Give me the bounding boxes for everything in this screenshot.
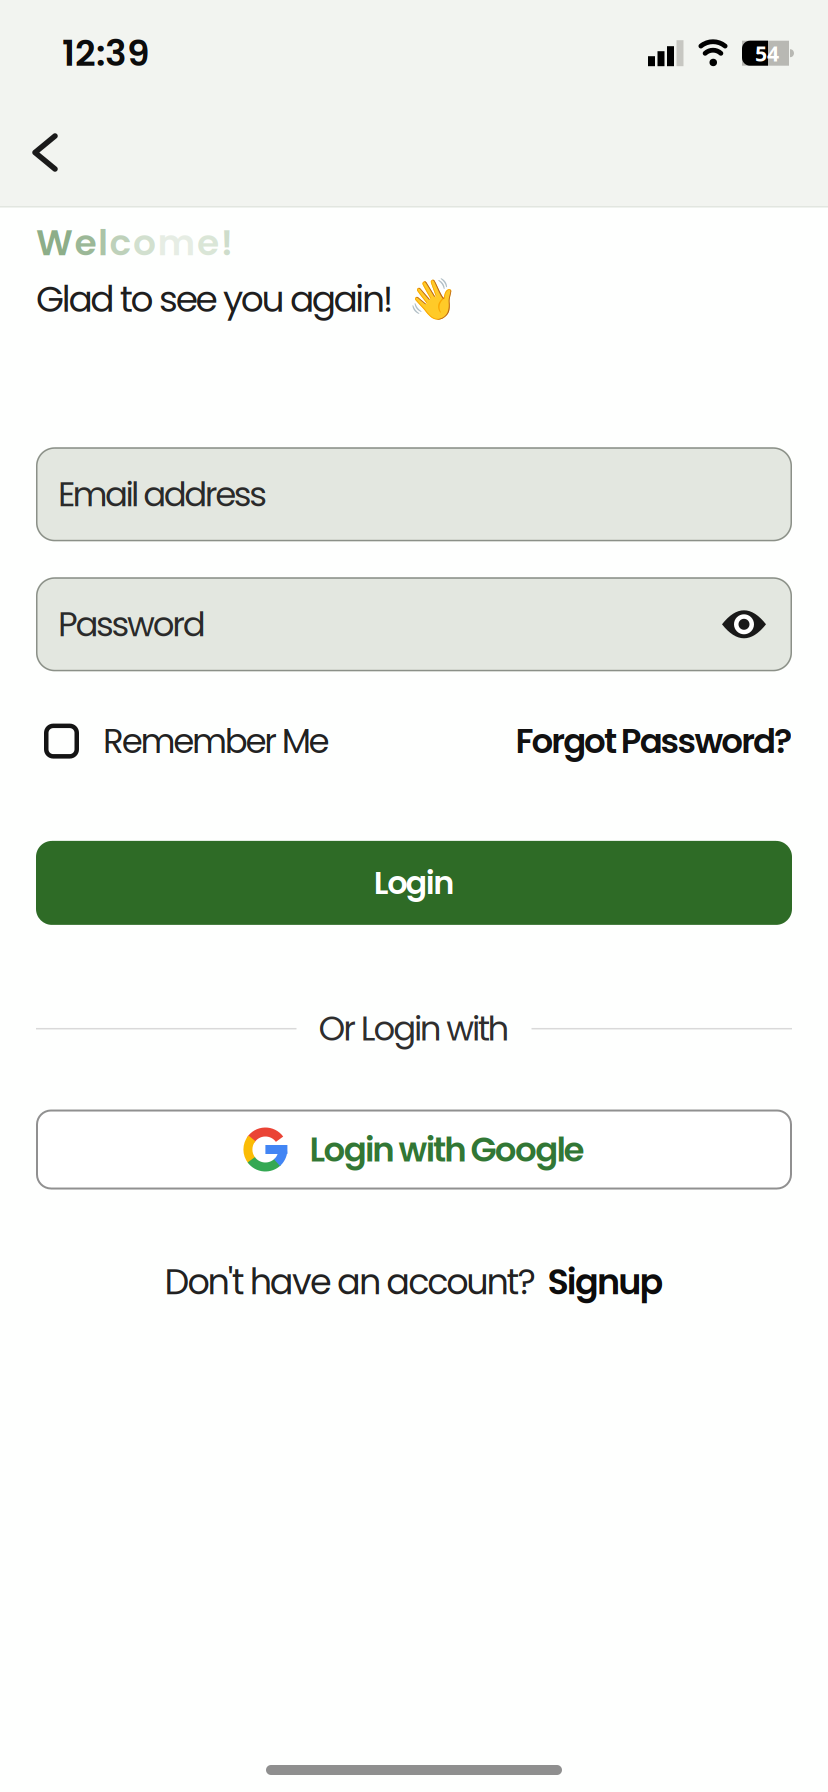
button[interactable]: Login with Google	[36, 1109, 792, 1189]
staticText: W	[36, 217, 73, 268]
staticText: 12:39	[62, 28, 150, 78]
staticText: l	[98, 217, 108, 268]
staticText: Password	[58, 600, 206, 648]
staticText: Don't have an account?	[164, 1257, 535, 1306]
button[interactable]: Show password	[722, 609, 792, 639]
staticText: Login	[374, 860, 454, 905]
button[interactable]: Back	[0, 133, 62, 206]
staticText: 👋	[408, 276, 458, 322]
staticText: 54	[755, 39, 779, 67]
staticText: Or Login with	[318, 1005, 509, 1052]
button[interactable]: Forgot Password?	[515, 717, 792, 765]
staticText: e	[74, 217, 96, 268]
button[interactable]: Login	[36, 841, 792, 925]
staticText: m	[157, 217, 195, 268]
staticText: e	[197, 217, 219, 268]
staticText: o	[133, 217, 156, 268]
staticText: !	[220, 217, 233, 268]
staticText: Glad to see you again!	[36, 274, 394, 324]
button[interactable]: Remember Me	[36, 717, 329, 765]
staticText: Login with Google	[309, 1126, 585, 1173]
staticText: Remember Me	[103, 717, 329, 765]
staticText: c	[109, 217, 131, 268]
staticText: Email address	[58, 470, 267, 518]
staticText: Forgot Password?	[515, 717, 792, 765]
staticText: Signup	[547, 1257, 663, 1306]
button[interactable]: Signup	[547, 1257, 663, 1306]
